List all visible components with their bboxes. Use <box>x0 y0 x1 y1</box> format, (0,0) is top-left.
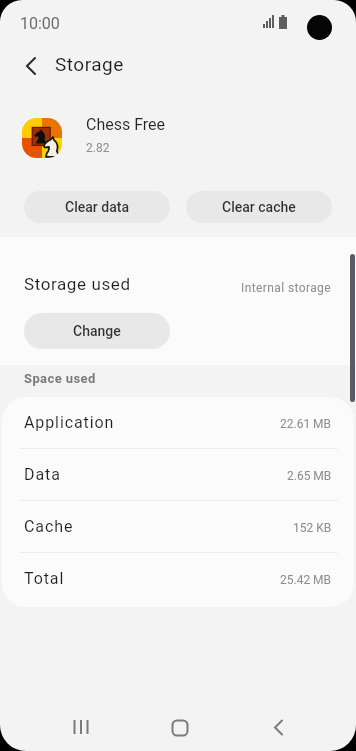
staticText: Total <box>24 569 65 588</box>
staticText: Storage used <box>24 274 131 294</box>
staticText: 152 KB <box>293 521 332 535</box>
button[interactable] <box>14 50 46 82</box>
button[interactable] <box>156 703 204 751</box>
staticText: 2.82 <box>86 141 110 155</box>
staticText: Cache <box>24 517 74 536</box>
button[interactable]: Clear data <box>24 191 170 223</box>
staticText: Change <box>73 323 121 339</box>
staticText: 25.42 MB <box>280 573 332 587</box>
staticText: 2.65 MB <box>287 469 332 483</box>
button[interactable] <box>256 703 304 751</box>
staticText: Space used <box>24 371 96 386</box>
staticText: Data <box>24 465 61 484</box>
button[interactable]: Change <box>24 313 170 349</box>
staticText: Application <box>24 413 115 432</box>
staticText: Clear cache <box>222 199 296 215</box>
staticText: Internal storage <box>241 281 332 295</box>
button[interactable]: Clear cache <box>186 191 332 223</box>
staticText: 22.61 MB <box>280 417 332 431</box>
staticText: Storage <box>55 53 124 75</box>
staticText: 10:00 <box>20 14 60 33</box>
button[interactable] <box>56 703 104 751</box>
staticText: Chess Free <box>86 115 166 134</box>
staticText: Clear data <box>65 199 129 215</box>
